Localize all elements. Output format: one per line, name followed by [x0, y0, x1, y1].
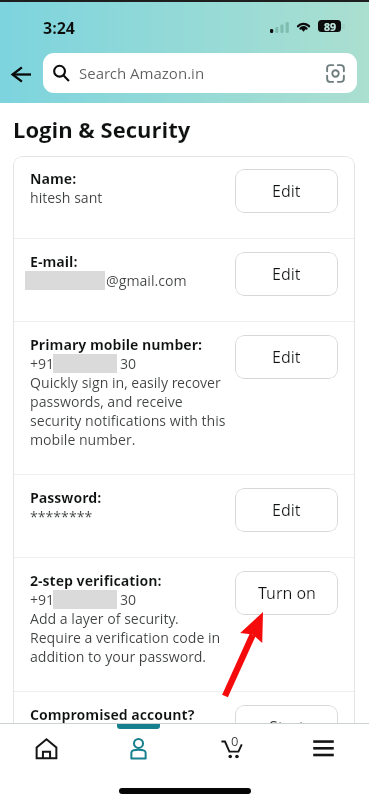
button[interactable]: 2-step verification:	[13, 558, 355, 691]
button[interactable]: Home	[0, 724, 92, 771]
staticText: 30	[120, 354, 137, 373]
staticText: +91	[30, 590, 55, 609]
button[interactable]: Menu	[277, 724, 369, 771]
button[interactable]: Edit	[235, 335, 338, 379]
button[interactable]: Cart	[185, 724, 277, 771]
staticText: @gmail.com	[106, 271, 187, 290]
staticText: ********	[30, 507, 93, 526]
staticText: Edit	[272, 180, 301, 202]
staticText: Edit	[272, 263, 301, 285]
staticText: 0	[231, 732, 239, 750]
staticText: Primary mobile number:	[30, 335, 203, 354]
staticText: Login & Security	[13, 114, 191, 144]
button[interactable]: Edit	[235, 169, 338, 213]
button[interactable]: Back	[5, 54, 37, 95]
button[interactable]: Password:	[13, 475, 355, 557]
button[interactable]: Turn on	[235, 571, 338, 615]
staticText: hitesh sant	[30, 188, 103, 207]
staticText: Compromised account?	[30, 705, 195, 724]
staticText: Search Amazon.in	[79, 63, 205, 83]
button[interactable]: Edit	[235, 252, 338, 296]
staticText: 89	[324, 20, 336, 32]
staticText: Name:	[30, 169, 77, 188]
button[interactable]: Start	[235, 705, 338, 749]
button[interactable]: Compromised account?	[13, 692, 355, 774]
staticText: Edit	[272, 499, 301, 521]
button[interactable]: Name:	[13, 156, 355, 238]
staticText: Edit	[272, 346, 301, 368]
staticText: Add a layer of security. Require a verif…	[30, 609, 234, 666]
button[interactable]: Primary mobile number:	[13, 322, 355, 474]
staticText: 3:24	[43, 17, 75, 39]
staticText: 2-step verification:	[30, 571, 162, 590]
staticText: E-mail:	[30, 252, 78, 271]
button[interactable]: Search Amazon.in	[43, 53, 357, 93]
staticText: +91	[30, 354, 55, 373]
button[interactable]: Edit	[235, 488, 338, 532]
staticText: Start	[269, 716, 305, 738]
button[interactable]: Account	[92, 724, 184, 771]
staticText: Quickly sign in, easily recover password…	[30, 373, 234, 449]
staticText: 30	[120, 590, 137, 609]
button[interactable]: E-mail:	[13, 239, 355, 321]
staticText: Password:	[30, 488, 102, 507]
staticText: Turn on	[258, 582, 316, 604]
